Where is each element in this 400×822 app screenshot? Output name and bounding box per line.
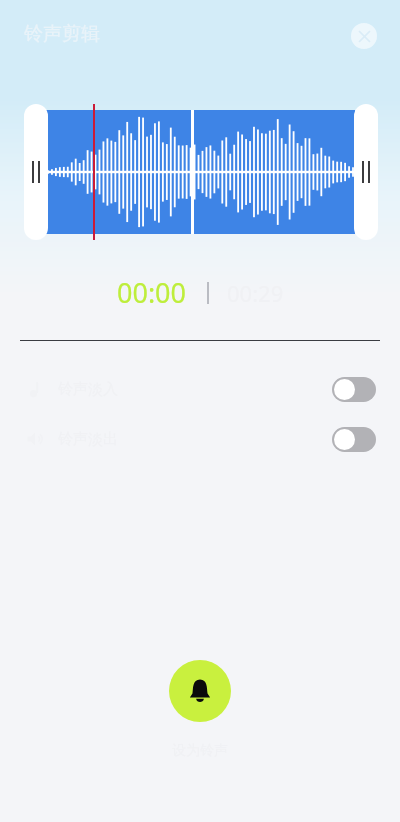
button[interactable]: 铃声淡出 — [332, 427, 376, 452]
button[interactable]: 铃声淡出 — [0, 418, 400, 460]
button[interactable]: 设为铃声 — [169, 660, 231, 722]
button[interactable]: Close — [351, 23, 377, 49]
button[interactable] — [46, 110, 355, 234]
button[interactable]: 铃声淡入 — [0, 368, 400, 410]
button[interactable]: Trim start — [24, 104, 48, 240]
button[interactable]: 铃声淡入 — [332, 377, 376, 402]
button[interactable]: Trim end — [354, 104, 378, 240]
staticText: 00:00 — [117, 274, 187, 311]
button[interactable]: 铃声剪辑 — [22, 20, 102, 48]
staticText: 铃声剪辑 — [24, 22, 100, 46]
